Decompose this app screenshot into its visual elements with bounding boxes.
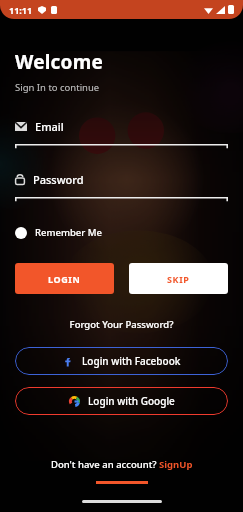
staticText: 11:11 — [9, 4, 33, 16]
staticText: LOGIN — [48, 273, 81, 285]
staticText: Welcome — [15, 49, 103, 75]
staticText: Sign In to continue — [15, 81, 100, 94]
button[interactable]: LOGIN — [15, 263, 114, 294]
staticText: Email — [35, 119, 64, 134]
staticText: Login with Facebook — [82, 354, 181, 368]
button[interactable]: Password — [0, 172, 243, 202]
staticText: SKIP — [167, 273, 190, 285]
staticText: SignUp — [159, 458, 193, 471]
button[interactable]: Don't have an account? — [45, 456, 199, 473]
button[interactable]: Forgot Your Password? — [0, 316, 243, 333]
button[interactable]: Login with Google — [15, 387, 228, 415]
staticText: Don't have an account? — [51, 458, 159, 471]
staticText: Password — [33, 172, 84, 187]
button[interactable]: Email — [0, 119, 243, 149]
staticText: Remember Me — [35, 226, 102, 239]
button[interactable]: Remember Me — [15, 224, 102, 241]
button[interactable]: SKIP — [129, 263, 228, 294]
button[interactable]: Login with Facebook — [15, 347, 228, 375]
staticText: Login with Google — [88, 394, 175, 408]
